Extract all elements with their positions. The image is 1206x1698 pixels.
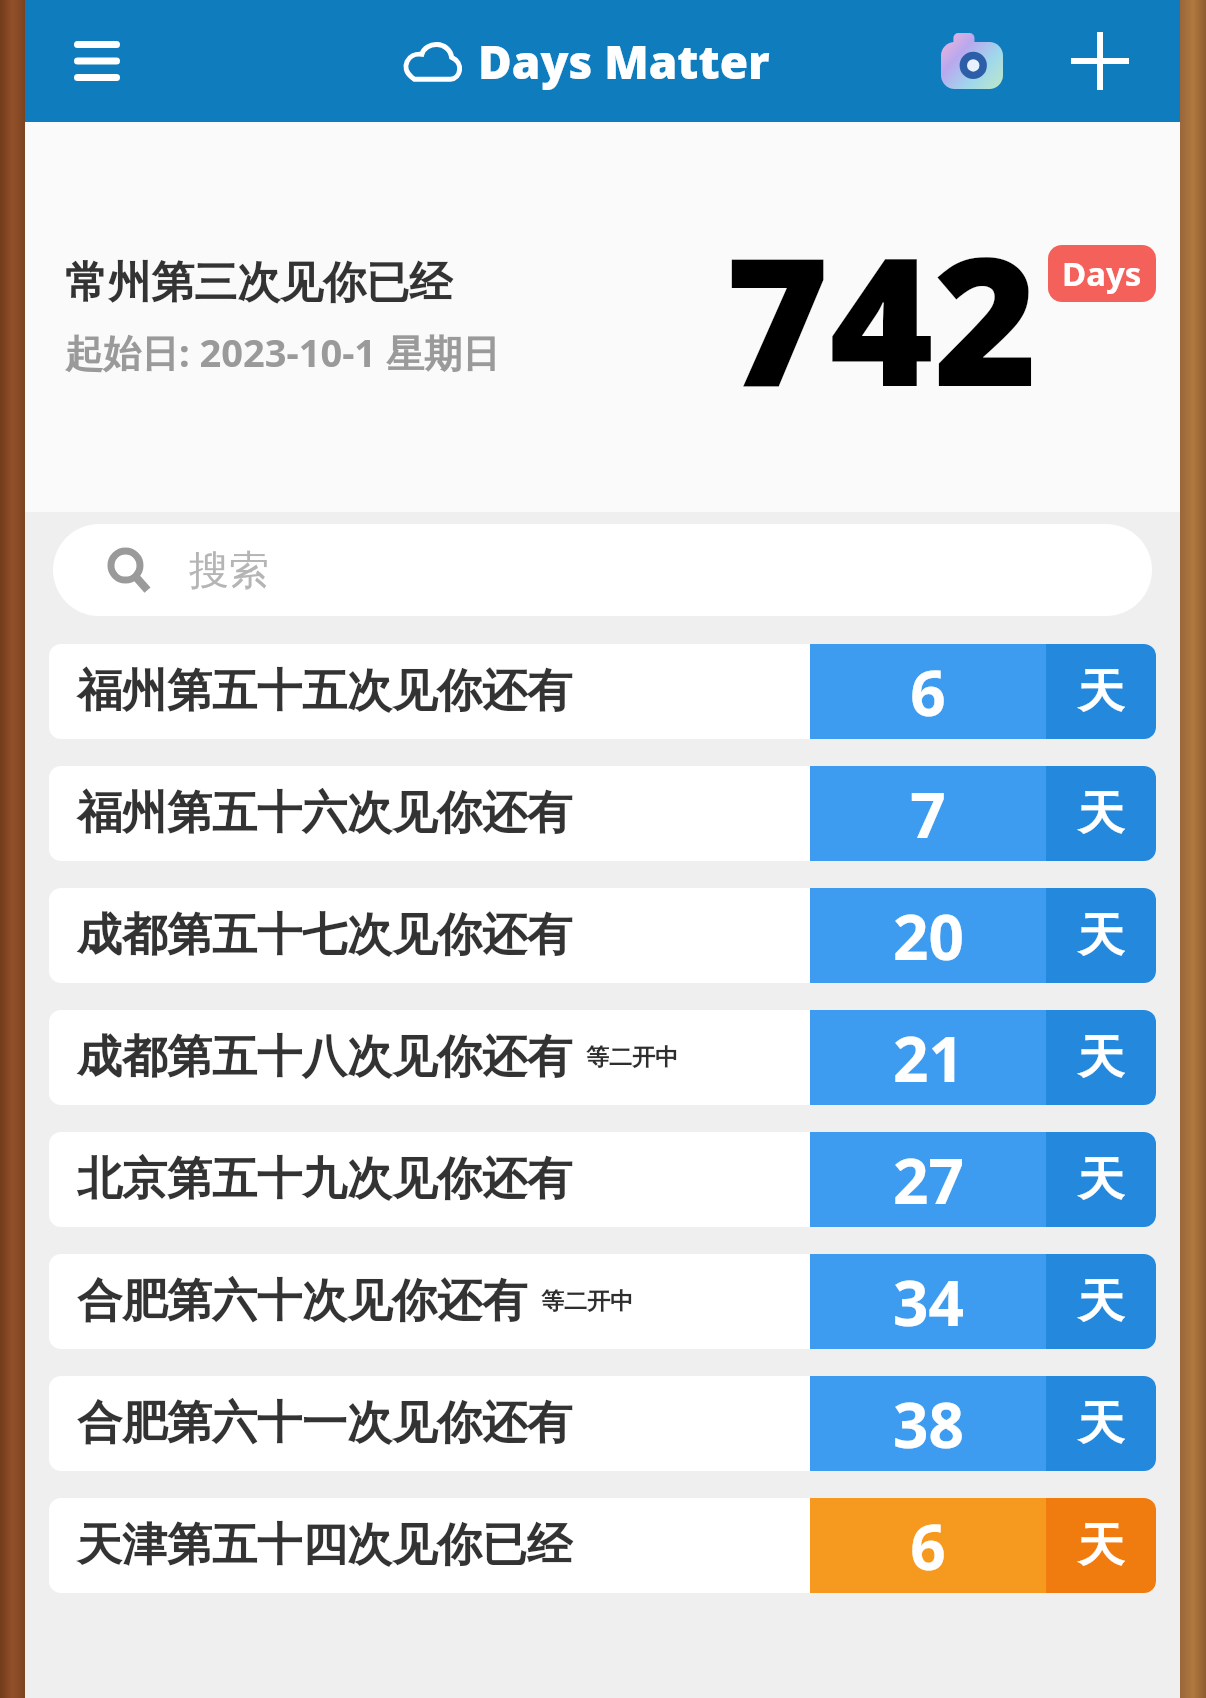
button[interactable]: 天津第五十四次见你已经 bbox=[49, 1498, 1156, 1593]
staticText: 天 bbox=[1078, 1395, 1124, 1453]
button[interactable]: 成都第五十八次见你还有 bbox=[49, 1010, 1156, 1105]
button[interactable]: 北京第五十九次见你还有 bbox=[49, 1132, 1156, 1227]
staticText: 北京第五十九次见你还有 bbox=[77, 1151, 572, 1208]
button[interactable]: 合肥第六十一次见你还有 bbox=[49, 1376, 1156, 1471]
staticText: 38 bbox=[893, 1382, 964, 1466]
button[interactable]: 合肥第六十次见你还有 bbox=[49, 1254, 1156, 1349]
staticText: 搜索 bbox=[189, 545, 269, 595]
staticText: 起始日: 2023-10-1 星期日 bbox=[65, 326, 500, 378]
button[interactable]: 搜索 bbox=[53, 524, 1152, 616]
staticText: 天 bbox=[1078, 1029, 1124, 1087]
staticText: 常州第三次见你已经 bbox=[65, 256, 452, 310]
button[interactable]: 常州第三次见你已经 bbox=[25, 122, 1180, 512]
staticText: 合肥第六十次见你还有 bbox=[77, 1273, 527, 1330]
button[interactable]: Add bbox=[1060, 21, 1140, 101]
staticText: 天 bbox=[1078, 1151, 1124, 1209]
staticText: 天 bbox=[1078, 785, 1124, 843]
button[interactable]: 福州第五十六次见你还有 bbox=[49, 766, 1156, 861]
staticText: 等二开中 bbox=[541, 1287, 633, 1316]
staticText: 成都第五十八次见你还有 bbox=[77, 1029, 572, 1086]
staticText: 21 bbox=[893, 1016, 964, 1100]
button[interactable]: Menu bbox=[61, 25, 133, 97]
staticText: 天 bbox=[1078, 1273, 1124, 1331]
staticText: 天 bbox=[1078, 1517, 1124, 1575]
staticText: 成都第五十七次见你还有 bbox=[77, 907, 572, 964]
staticText: 7 bbox=[910, 772, 946, 856]
staticText: Days Matter bbox=[478, 30, 770, 93]
button[interactable]: Camera bbox=[932, 21, 1012, 101]
staticText: 天津第五十四次见你已经 bbox=[77, 1517, 572, 1574]
staticText: 合肥第六十一次见你还有 bbox=[77, 1395, 572, 1452]
staticText: 福州第五十五次见你还有 bbox=[77, 663, 572, 720]
button[interactable]: 成都第五十七次见你还有 bbox=[49, 888, 1156, 983]
staticText: 天 bbox=[1078, 907, 1124, 965]
staticText: 742 bbox=[725, 196, 1038, 438]
staticText: 等二开中 bbox=[586, 1043, 678, 1072]
staticText: Days bbox=[1062, 251, 1142, 296]
staticText: 20 bbox=[893, 894, 964, 978]
button[interactable]: 福州第五十五次见你还有 bbox=[49, 644, 1156, 739]
staticText: 福州第五十六次见你还有 bbox=[77, 785, 572, 842]
staticText: 6 bbox=[910, 650, 946, 734]
staticText: 34 bbox=[893, 1260, 964, 1344]
staticText: 27 bbox=[893, 1138, 964, 1222]
staticText: 6 bbox=[910, 1504, 946, 1588]
staticText: 天 bbox=[1078, 663, 1124, 721]
